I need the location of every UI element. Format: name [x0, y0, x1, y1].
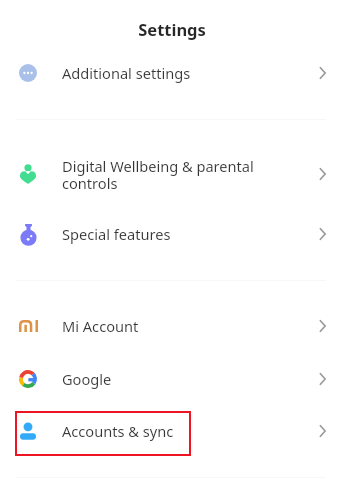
staticText: Special features	[62, 224, 171, 244]
button[interactable]: Additional settings	[0, 50, 343, 96]
button[interactable]: Digital Wellbeing & parental controls	[0, 151, 343, 197]
staticText: Google	[62, 369, 112, 389]
staticText: Settings	[138, 18, 206, 40]
button[interactable]: Google	[0, 356, 343, 402]
button[interactable]: Accounts & sync	[0, 408, 343, 454]
staticText: Mi Account	[62, 316, 139, 336]
button[interactable]: Special features	[0, 211, 343, 257]
staticText: Accounts & sync	[62, 421, 174, 441]
staticText: Digital Wellbeing & parental controls	[62, 156, 254, 193]
staticText: Additional settings	[62, 63, 191, 83]
button[interactable]: Mi Account	[0, 303, 343, 349]
